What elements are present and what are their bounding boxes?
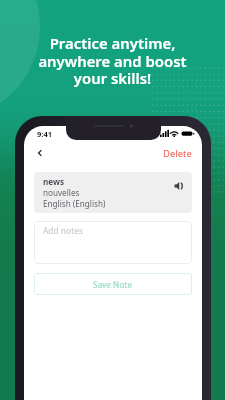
button[interactable]: Play pronunciation — [174, 181, 184, 191]
staticText: Practice anytime, anywhere and boost you… — [38, 33, 187, 88]
button[interactable]: Save Note — [34, 273, 192, 295]
staticText: Delete — [163, 147, 192, 160]
staticText: news — [43, 176, 65, 187]
staticText: Add notes — [43, 225, 83, 236]
staticText: 9:41 — [37, 129, 52, 139]
button[interactable]: Back — [33, 146, 47, 160]
staticText: English (English) — [43, 198, 106, 209]
staticText: nouvelles — [43, 187, 80, 198]
staticText: Save Note — [93, 279, 133, 290]
button[interactable]: Add notes — [34, 221, 192, 264]
button[interactable]: Delete — [163, 147, 192, 160]
button[interactable]: news — [34, 172, 192, 213]
